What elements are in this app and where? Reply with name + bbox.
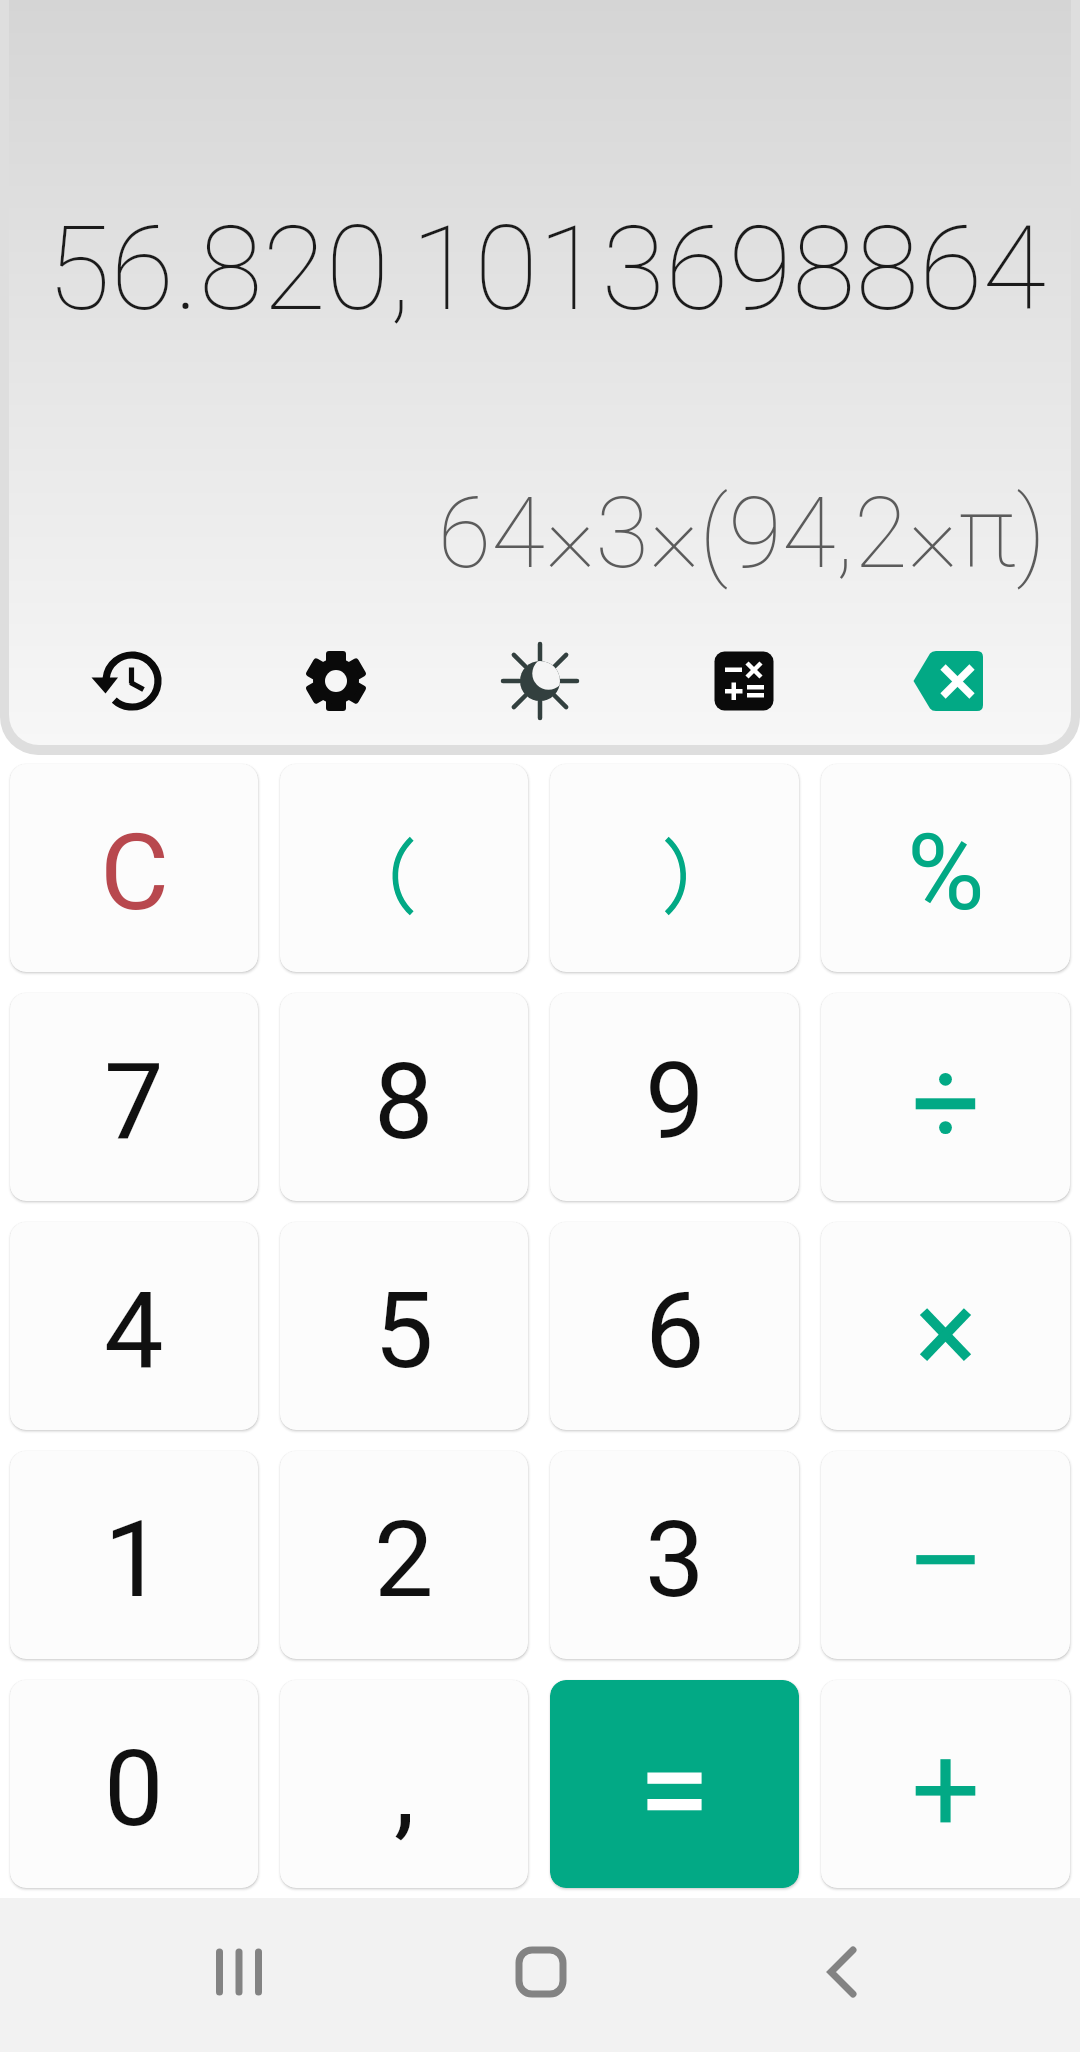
button[interactable]: Recent apps [189, 1922, 289, 2022]
button[interactable] [821, 1451, 1070, 1659]
staticText: 6 [645, 1269, 705, 1393]
button[interactable]: 5 [280, 1222, 528, 1430]
staticText: 4 [104, 1269, 164, 1393]
staticText: 56.820,1013698864 [47, 201, 1046, 337]
button[interactable]: 6 [550, 1222, 799, 1430]
button[interactable] [821, 1222, 1070, 1430]
staticText: 9 [645, 1040, 705, 1164]
button[interactable]: 0 [10, 1680, 258, 1888]
staticText: 64×3×(94,2×π) [437, 476, 1046, 591]
button[interactable]: 1 [10, 1451, 258, 1659]
button[interactable]: 4 [10, 1222, 258, 1430]
staticText: 8 [374, 1040, 434, 1164]
button[interactable]: , [280, 1680, 528, 1888]
button[interactable]: C [10, 764, 258, 972]
button[interactable]: Backspace [898, 631, 998, 731]
staticText: 1 [104, 1498, 164, 1622]
staticText: 0 [104, 1727, 164, 1851]
button[interactable]: History [82, 631, 182, 731]
button[interactable]: Scientific calculator [694, 631, 794, 731]
staticText: 2 [374, 1498, 434, 1622]
button[interactable] [821, 1680, 1070, 1888]
staticText: 5 [374, 1269, 434, 1393]
button[interactable]: 3 [550, 1451, 799, 1659]
button[interactable]: 7 [10, 993, 258, 1201]
button[interactable]: 2 [280, 1451, 528, 1659]
button[interactable]: % [821, 764, 1070, 972]
button[interactable]: Back [792, 1922, 892, 2022]
button[interactable] [821, 993, 1070, 1201]
staticText: , [394, 1727, 415, 1851]
button[interactable] [550, 1680, 799, 1888]
button[interactable]: Home [491, 1922, 591, 2022]
button[interactable] [550, 764, 799, 972]
button[interactable] [280, 764, 528, 972]
staticText: 3 [645, 1498, 705, 1622]
button[interactable]: Settings [286, 631, 386, 731]
staticText: C [100, 811, 169, 935]
staticText: 7 [104, 1040, 164, 1164]
button[interactable]: Theme [490, 631, 590, 731]
button[interactable]: 8 [280, 993, 528, 1201]
button[interactable]: 9 [550, 993, 799, 1201]
staticText: % [907, 811, 985, 935]
